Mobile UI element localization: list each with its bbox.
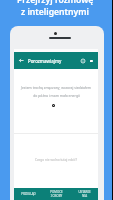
button[interactable]: Back [18,57,25,64]
button[interactable]: Information [79,57,86,64]
staticText: PRZEGLĄD [21,192,36,196]
staticText: Jestem trochę zmęczony, wczoraj siedział… [21,85,91,90]
button[interactable]: USTAWIE NIA [70,188,98,200]
button[interactable]: PRZEGLĄD [14,188,42,200]
staticText: Czego nie wolno tutaj robić? [35,158,78,162]
button[interactable]: POMOCE I OSOBY [42,188,70,200]
button[interactable]: Video call [88,57,95,64]
button[interactable]: Czego nie wolno tutaj robić? [14,154,98,166]
staticText: z inteligentnymi [21,6,89,18]
staticText: Porozmawiajmy [28,58,62,64]
staticText: do późna i mam mało energii [33,93,80,98]
staticText: USTAWIE NIA [78,190,91,198]
staticText: Przejrzyj rozmowę [17,0,94,6]
staticText: POMOCE I OSOBY [50,190,63,198]
